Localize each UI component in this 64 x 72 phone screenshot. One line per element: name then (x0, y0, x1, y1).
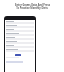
button[interactable] (6, 49, 34, 53)
button[interactable] (6, 21, 34, 25)
button[interactable] (6, 29, 34, 33)
button[interactable] (6, 45, 34, 49)
button[interactable] (15, 54, 21, 56)
staticText: Enter Grams Data And Press (15, 3, 50, 6)
button[interactable] (6, 25, 34, 29)
button[interactable] (6, 33, 34, 37)
button[interactable] (6, 37, 34, 41)
button[interactable] (6, 41, 34, 45)
staticText: To Practise Monthly Diets (16, 6, 48, 9)
